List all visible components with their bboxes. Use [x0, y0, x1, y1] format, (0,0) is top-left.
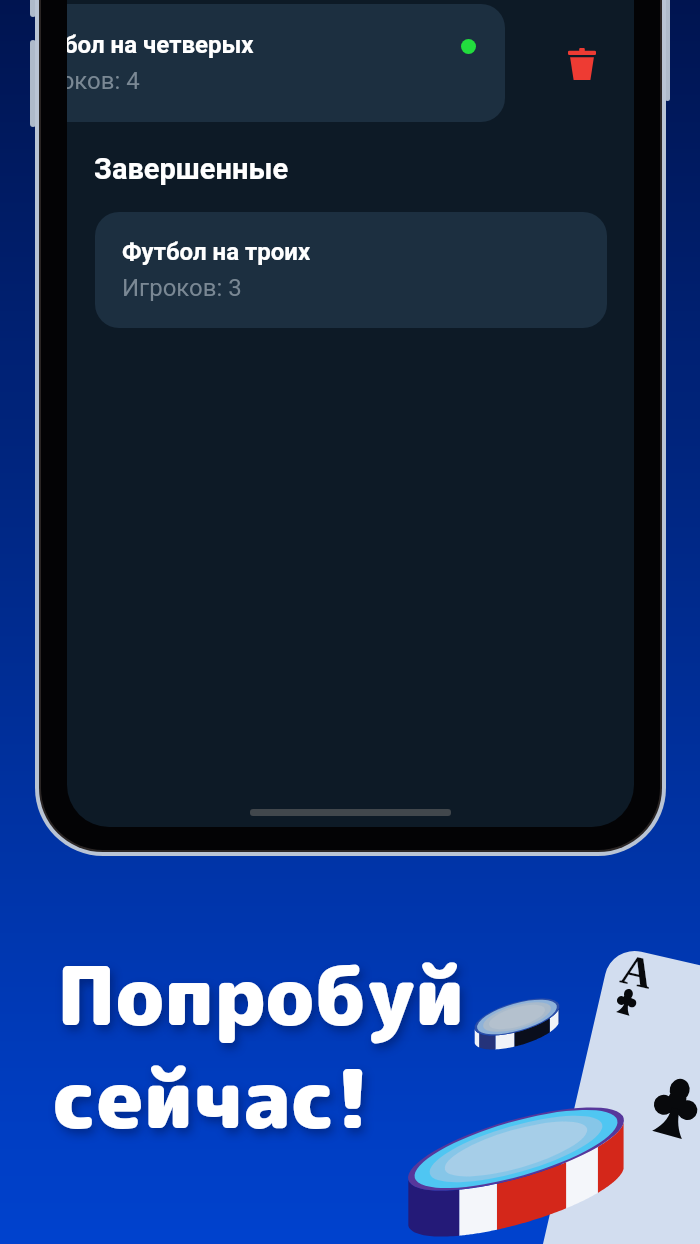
button[interactable]: Delete [558, 40, 606, 88]
staticText: Завершенные [94, 152, 289, 186]
button[interactable]: Футбол на троих [95, 212, 607, 328]
staticText: Футбол на троих [122, 238, 311, 266]
staticText: Игроков: 3 [122, 274, 242, 302]
staticText: Попробуй [57, 938, 465, 1051]
staticText: сейчас! [53, 1041, 371, 1154]
staticText: Футбол на четверых [67, 31, 254, 59]
staticText: Игроков: 4 [67, 67, 140, 95]
button[interactable]: Футбол на четверых [67, 4, 505, 122]
staticText: A [617, 945, 659, 995]
